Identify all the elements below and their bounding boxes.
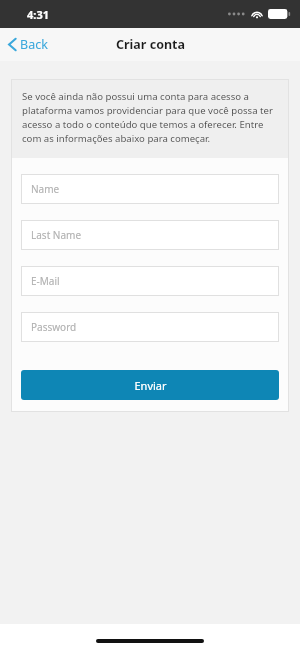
button[interactable]: E-Mail [21, 266, 279, 296]
staticText: Last Name [31, 228, 82, 242]
staticText: Back [20, 36, 48, 53]
staticText: Password [31, 320, 77, 334]
button[interactable]: Name [21, 174, 279, 204]
other: Home indicator [96, 639, 204, 643]
staticText: Se você ainda não possui uma conta para … [22, 90, 278, 145]
button[interactable]: Back [0, 32, 58, 57]
button[interactable]: Enviar [21, 370, 279, 400]
staticText: Enviar [134, 378, 167, 393]
staticText: Criar conta [116, 36, 185, 53]
button[interactable]: Last Name [21, 220, 279, 250]
staticText: 4:31 [27, 7, 49, 22]
staticText: Name [31, 182, 60, 196]
button[interactable]: Password [21, 312, 279, 342]
staticText: E-Mail [31, 274, 60, 288]
